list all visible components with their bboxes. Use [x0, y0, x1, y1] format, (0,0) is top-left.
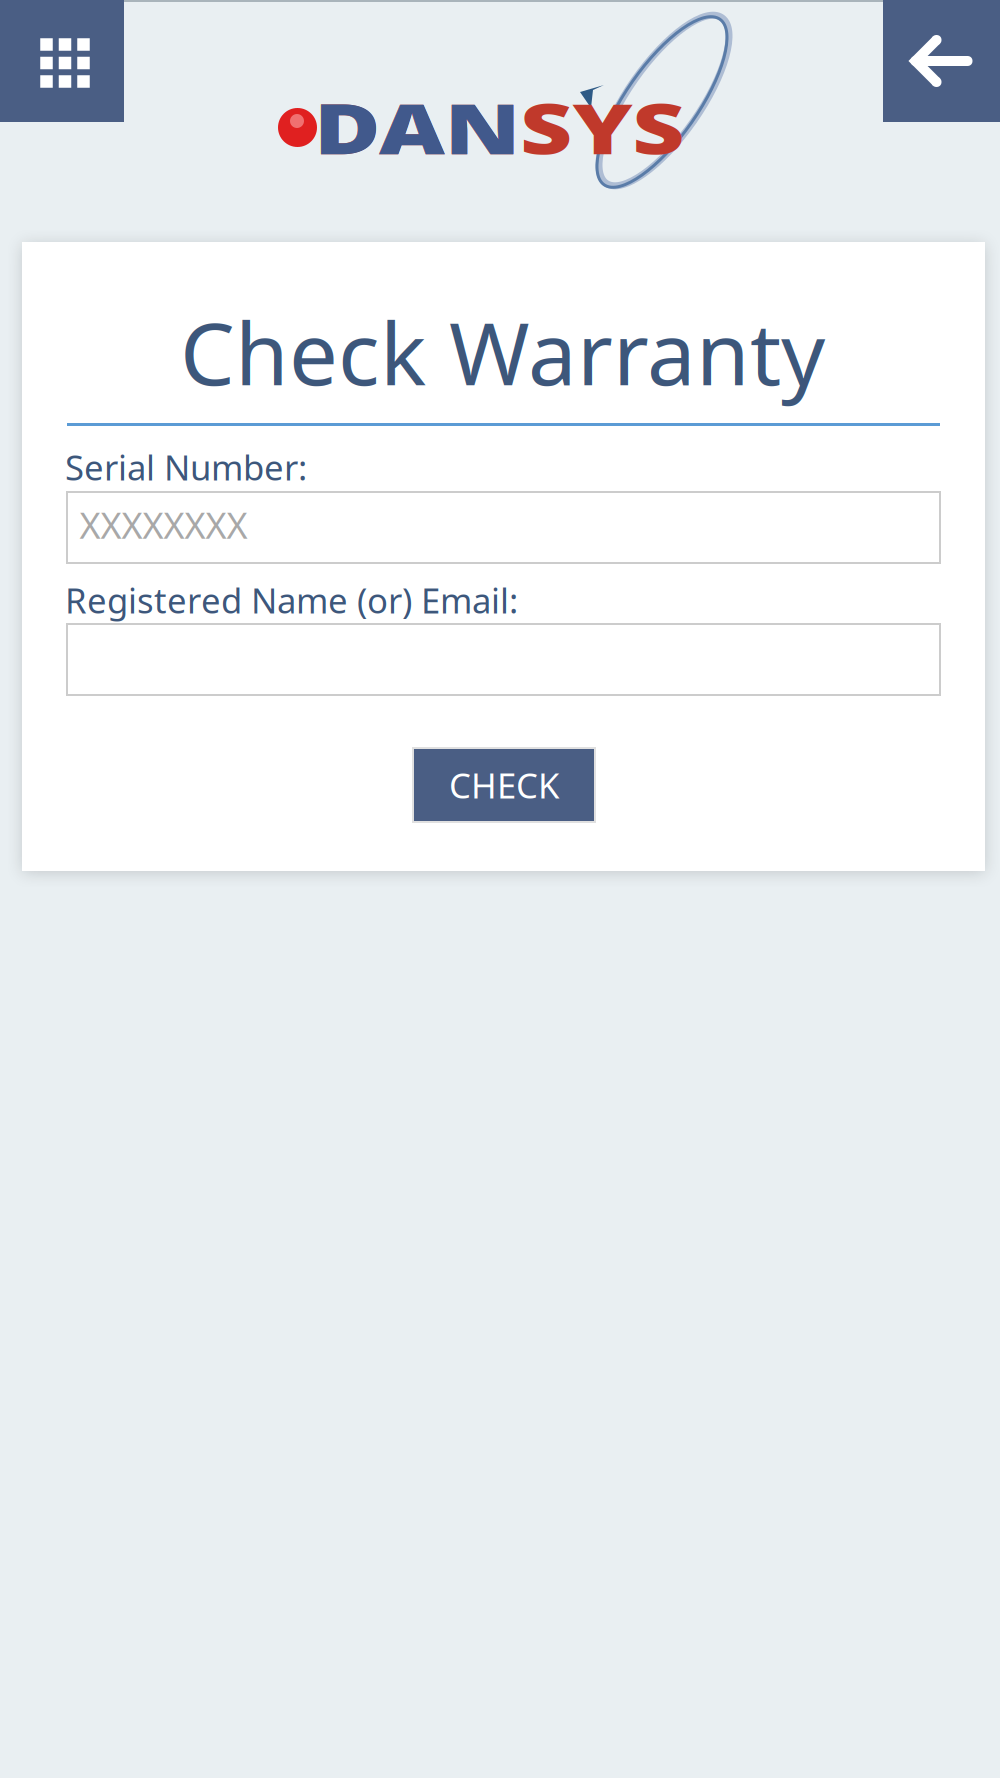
staticText: DAN	[314, 82, 514, 199]
staticText: Serial Number:	[65, 444, 307, 490]
button[interactable]: Serial Number	[67, 492, 940, 563]
button[interactable]: Back	[883, 0, 1000, 122]
button[interactable]: Registered Name or Email	[67, 624, 940, 695]
staticText: Registered Name (or) Email:	[65, 577, 518, 623]
button[interactable]: CHECK	[413, 748, 595, 822]
button[interactable]: Menu	[0, 0, 124, 122]
staticText: XXXXXXXX	[79, 501, 247, 549]
staticText: Check Warranty	[180, 294, 825, 409]
staticText: CHECK	[449, 762, 559, 808]
staticText: DANSYS	[314, 82, 674, 199]
